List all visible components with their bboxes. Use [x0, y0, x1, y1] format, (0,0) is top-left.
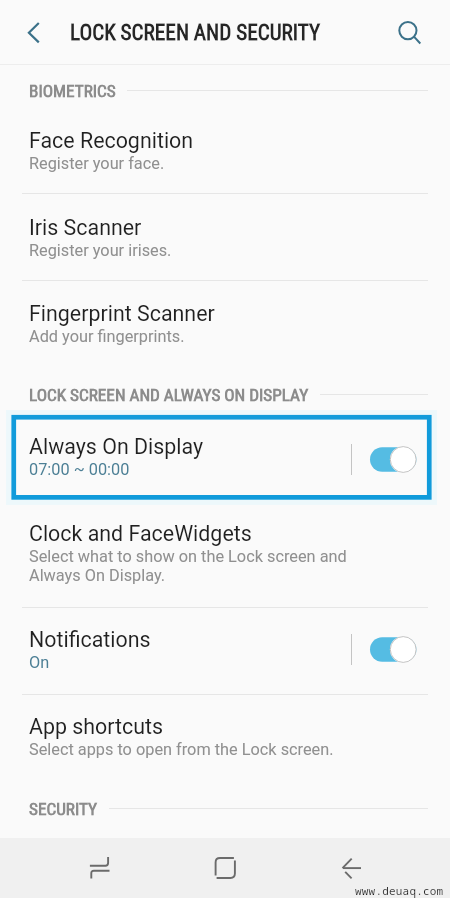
- button[interactable]: Back: [328, 846, 375, 893]
- staticText: Face Recognition: [29, 128, 194, 153]
- staticText: Register your face.: [29, 154, 165, 173]
- button[interactable]: Navigate up: [12, 10, 57, 55]
- staticText: LOCK SCREEN AND ALWAYS ON DISPLAY: [29, 385, 309, 405]
- staticText: Select what to show on the Lock screen a…: [29, 547, 347, 566]
- staticText: App shortcuts: [29, 714, 164, 739]
- staticText: Clock and FaceWidgets: [29, 521, 252, 546]
- button[interactable]: App shortcuts: [0, 693, 450, 779]
- staticText: SECURITY: [29, 799, 98, 819]
- staticText: www.deuaq.com: [355, 883, 444, 898]
- button[interactable]: Clock and FaceWidgets: [0, 502, 450, 607]
- button[interactable]: Face Recognition: [0, 107, 450, 193]
- staticText: 07:00 ~ 00:00: [29, 460, 130, 479]
- button[interactable]: Always On Display: [0, 417, 450, 502]
- staticText: Register your irises.: [29, 241, 172, 260]
- button[interactable]: Toggle on: [370, 636, 417, 663]
- button[interactable]: Fingerprint Scanner: [0, 280, 450, 366]
- button[interactable]: Toggle on: [370, 446, 417, 473]
- staticText: Iris Scanner: [29, 215, 142, 240]
- button[interactable]: Iris Scanner: [0, 194, 450, 280]
- staticText: BIOMETRICS: [29, 81, 116, 101]
- staticText: LOCK SCREEN AND SECURITY: [70, 20, 321, 45]
- staticText: On: [29, 653, 50, 672]
- button[interactable]: Recent apps: [76, 846, 123, 893]
- staticText: Always On Display: [29, 434, 204, 459]
- button[interactable]: Search: [385, 8, 430, 53]
- button[interactable]: Home: [202, 846, 249, 893]
- button[interactable]: Notifications: [0, 606, 450, 692]
- staticText: Select apps to open from the Lock screen…: [29, 740, 334, 759]
- staticText: Always On Display.: [29, 566, 166, 585]
- staticText: Add your fingerprints.: [29, 327, 185, 346]
- staticText: Notifications: [29, 627, 151, 652]
- staticText: Fingerprint Scanner: [29, 301, 215, 326]
